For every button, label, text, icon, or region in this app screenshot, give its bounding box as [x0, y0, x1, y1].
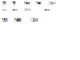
staticText: Optional — [48, 0, 55, 5]
staticText: 993 — [2, 16, 8, 23]
staticText: 993 — [12, 0, 16, 5]
staticText: None — [44, 8, 50, 11]
staticText: None — [36, 0, 41, 5]
staticText: None — [14, 16, 22, 23]
staticText: Optional — [30, 16, 37, 23]
staticText: None — [24, 0, 30, 5]
staticText: 993 — [2, 8, 7, 11]
staticText: 993 — [2, 0, 6, 5]
staticText: Optional — [24, 8, 30, 11]
staticText: None — [12, 8, 18, 11]
